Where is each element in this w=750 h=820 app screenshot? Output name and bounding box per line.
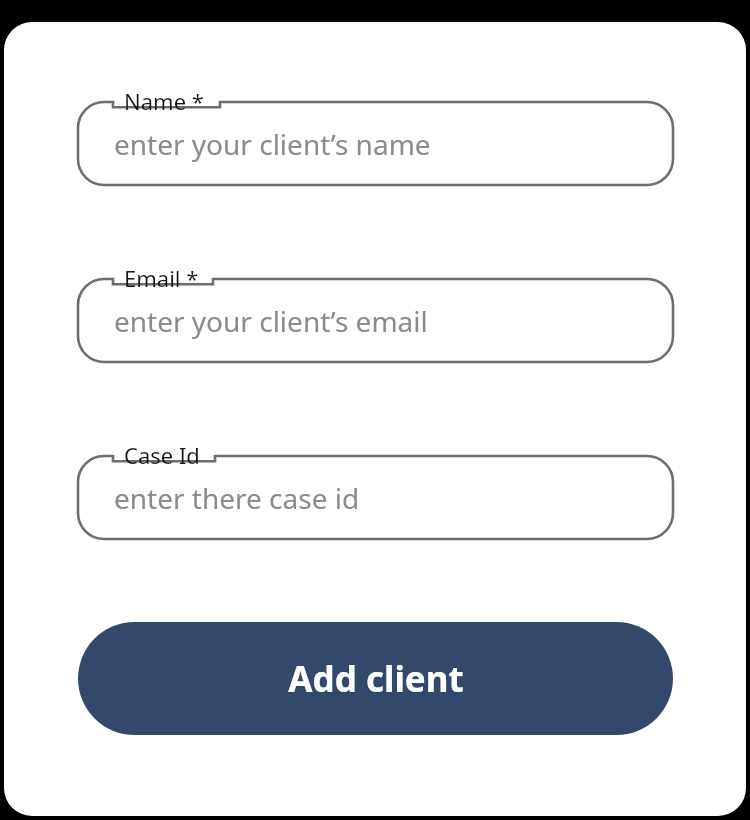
staticText: Case Id bbox=[124, 440, 200, 470]
button[interactable]: Name field bbox=[78, 102, 673, 185]
staticText: enter your client’s name bbox=[114, 125, 431, 163]
staticText: Name * bbox=[124, 86, 204, 116]
staticText: Email * bbox=[124, 263, 199, 293]
staticText: Add client bbox=[288, 655, 464, 703]
button[interactable]: Email field bbox=[78, 279, 673, 362]
button[interactable]: Add client bbox=[78, 622, 673, 735]
staticText: enter your client’s email bbox=[114, 302, 428, 340]
button[interactable]: Case Id field bbox=[78, 456, 673, 539]
staticText: enter there case id bbox=[114, 479, 360, 517]
